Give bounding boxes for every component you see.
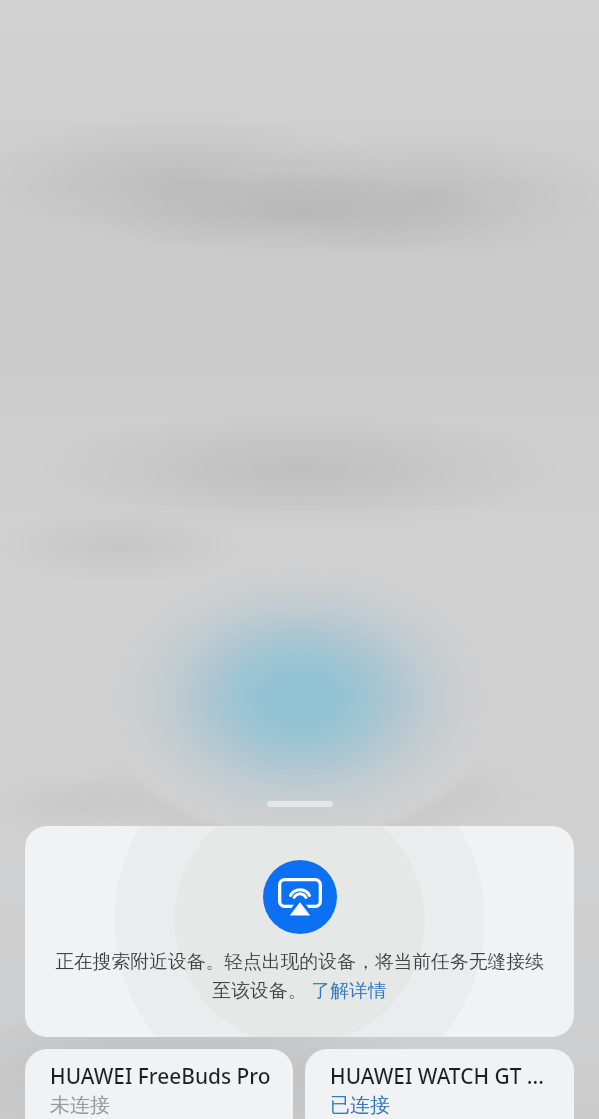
button[interactable]: HUAWEI WATCH GT ...	[305, 1049, 574, 1119]
button[interactable]: HUAWEI FreeBuds Pro	[25, 1049, 293, 1119]
staticText: 正在搜索附近设备。轻点出现的设备，将当前任务无缝接续至该设备。 了解详情	[53, 950, 546, 1003]
staticText: 已连接	[330, 1093, 390, 1118]
staticText: HUAWEI WATCH GT ...	[330, 1062, 544, 1090]
button[interactable]: Cast	[25, 826, 574, 1037]
staticText: HUAWEI FreeBuds Pro	[50, 1062, 271, 1090]
other: Cast	[278, 878, 322, 916]
staticText: 未连接	[50, 1093, 110, 1118]
